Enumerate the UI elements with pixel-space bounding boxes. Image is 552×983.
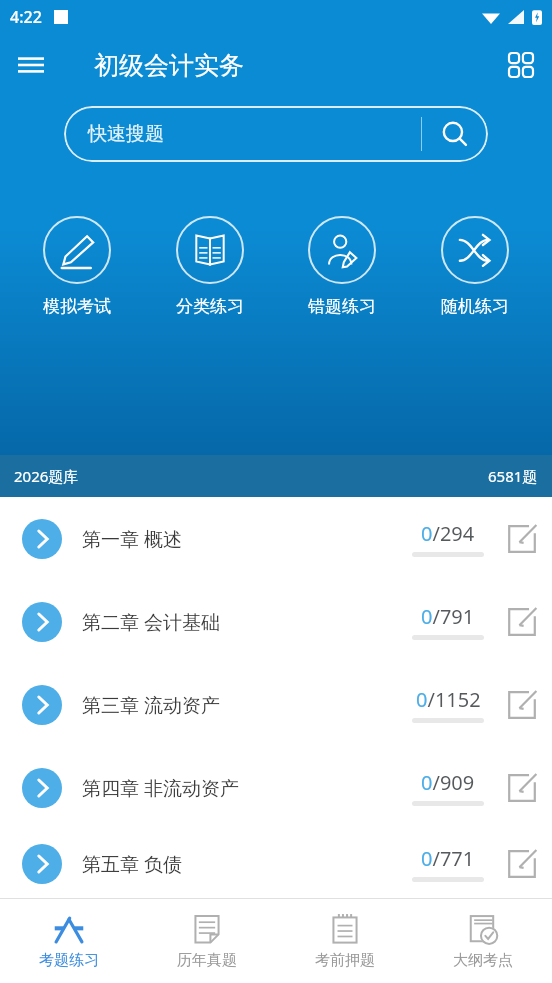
staticText: 第三章 流动资产 — [82, 692, 220, 718]
staticText: 错题练习 — [308, 296, 376, 317]
staticText: 模拟考试 — [43, 296, 111, 317]
button[interactable]: Edit — [500, 766, 544, 810]
button[interactable]: 第二章 会计基础 — [0, 580, 552, 663]
button[interactable]: 历年真题 — [138, 899, 276, 983]
button[interactable]: 考前押题 — [276, 899, 414, 983]
button[interactable]: Edit — [500, 842, 544, 886]
staticText: 考题练习 — [39, 951, 99, 970]
button[interactable]: 大纲考点 — [414, 899, 552, 983]
staticText: 0/791 — [421, 603, 475, 630]
staticText: 考前押题 — [315, 951, 375, 970]
staticText: 历年真题 — [177, 951, 237, 970]
button[interactable]: 模拟考试 — [22, 216, 132, 317]
button[interactable]: 第五章 负债 — [0, 829, 552, 898]
staticText: 第一章 概述 — [82, 526, 182, 552]
staticText: 4:22 — [10, 6, 42, 28]
button[interactable]: 错题练习 — [287, 216, 397, 317]
staticText: 第五章 负债 — [82, 851, 182, 877]
staticText: 第四章 非流动资产 — [82, 775, 239, 801]
staticText: 大纲考点 — [453, 951, 513, 970]
button[interactable]: Edit — [500, 683, 544, 727]
staticText: 快速搜题 — [88, 122, 164, 146]
staticText: 0/1152 — [416, 686, 481, 713]
button[interactable]: Edit — [500, 517, 544, 561]
staticText: 随机练习 — [441, 296, 509, 317]
staticText: 6581题 — [488, 466, 538, 486]
button[interactable]: Edit — [500, 600, 544, 644]
staticText: 2026题库 — [14, 466, 79, 486]
button[interactable]: 第一章 概述 — [0, 497, 552, 580]
staticText: 初级会计实务 — [94, 50, 244, 81]
staticText: 分类练习 — [176, 296, 244, 317]
staticText: 第二章 会计基础 — [82, 609, 220, 635]
button[interactable]: 第三章 流动资产 — [0, 663, 552, 746]
staticText: 0/771 — [421, 845, 475, 872]
button[interactable]: Menu — [0, 34, 62, 96]
button[interactable]: Grid view — [490, 34, 552, 96]
button[interactable]: 分类练习 — [155, 216, 265, 317]
staticText: 0/909 — [421, 769, 475, 796]
button[interactable]: 第四章 非流动资产 — [0, 746, 552, 829]
button[interactable]: 考题练习 — [0, 899, 138, 983]
button[interactable]: 快速搜题 — [64, 106, 488, 162]
button[interactable]: 随机练习 — [420, 216, 530, 317]
staticText: 0/294 — [421, 520, 475, 547]
